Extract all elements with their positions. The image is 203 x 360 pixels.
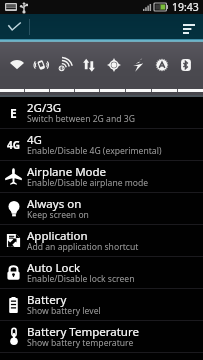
button[interactable]: GPS xyxy=(102,42,126,87)
staticText: 19:43 xyxy=(172,0,199,14)
staticText: Add an application shortcut xyxy=(27,241,139,253)
staticText: Always on xyxy=(27,196,82,212)
staticText: Keep screen on xyxy=(27,209,89,221)
staticText: Battery Temperature xyxy=(27,324,139,340)
button[interactable]: Application xyxy=(0,225,203,257)
staticText: 4G xyxy=(7,138,20,152)
button[interactable]: Airplane Mode xyxy=(0,161,203,193)
button[interactable]: Auto Lock xyxy=(0,257,203,289)
button[interactable]: Sort xyxy=(175,16,203,41)
button[interactable]: Vibrate xyxy=(29,42,53,87)
button[interactable]: Auto brightness xyxy=(150,42,174,87)
button[interactable]: Bluetooth xyxy=(174,42,198,87)
staticText: Show battery temperature xyxy=(27,337,134,349)
staticText: Airplane Mode xyxy=(27,164,107,180)
staticText: Switch between 2G and 3G xyxy=(27,113,135,125)
staticText: E xyxy=(10,105,17,121)
staticText: 2G/3G xyxy=(27,100,62,116)
button[interactable]: Battery Temperature xyxy=(0,321,203,353)
staticText: Enable/Disable 4G (experimental) xyxy=(27,145,162,157)
staticText: Show battery level xyxy=(27,305,101,317)
button[interactable]: Wi-Fi xyxy=(5,42,29,87)
button[interactable]: Always on xyxy=(0,193,203,225)
staticText: Enable/Disable airplane mode xyxy=(27,177,149,189)
button[interactable]: 4G xyxy=(0,129,203,161)
button[interactable]: Flashlight xyxy=(126,42,150,87)
staticText: Application xyxy=(27,228,88,244)
button[interactable]: Done xyxy=(0,14,29,39)
button[interactable]: Mobile data xyxy=(77,42,101,87)
staticText: Battery xyxy=(27,292,67,308)
button[interactable]: E xyxy=(0,97,203,129)
button[interactable]: Battery xyxy=(0,289,203,321)
staticText: 4G xyxy=(27,132,42,148)
button[interactable]: Silent mode xyxy=(53,42,77,87)
staticText: Enable/Disable lock screen xyxy=(27,273,135,285)
staticText: Auto Lock xyxy=(27,260,81,276)
